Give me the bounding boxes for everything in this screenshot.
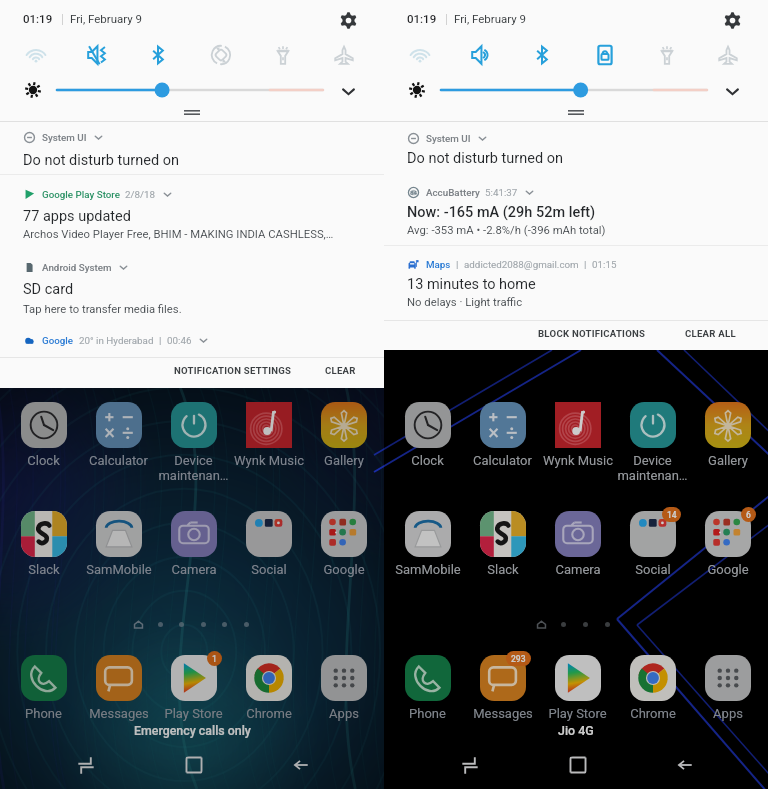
staticText: Calculator [473, 453, 532, 468]
button[interactable]: Wi-Fi [397, 39, 443, 71]
staticText: Calculator [89, 453, 148, 468]
button[interactable]: SamMobile [81, 511, 156, 577]
staticText: System UI [426, 133, 471, 144]
staticText: Phone [25, 706, 62, 721]
button[interactable]: Clock [6, 402, 81, 468]
button[interactable]: Messages [81, 655, 156, 721]
button[interactable]: SamMobile [390, 511, 465, 577]
staticText: Camera [171, 562, 217, 577]
staticText: Apps [329, 706, 359, 721]
button[interactable]: CLEAR ALL [679, 323, 742, 344]
button[interactable]: Device [615, 402, 690, 483]
staticText: System UI [42, 132, 87, 143]
button[interactable]: Screen lock [582, 39, 628, 71]
staticText: Apps [713, 706, 743, 721]
staticText: Play Store [548, 706, 607, 721]
button[interactable]: Phone [390, 655, 465, 721]
button[interactable]: Expand quick settings [720, 78, 744, 102]
button[interactable]: Airplane mode [705, 39, 751, 71]
button[interactable]: CLEAR [319, 360, 362, 381]
button[interactable]: Gallery [306, 402, 381, 468]
staticText: Wynk Music [543, 453, 613, 468]
staticText: | [159, 335, 162, 346]
button[interactable]: Gallery [690, 402, 765, 468]
button[interactable]: Chrome [615, 655, 690, 721]
staticText: 84 [410, 189, 418, 196]
button[interactable]: Settings [719, 7, 745, 33]
button[interactable]: Expand quick settings [336, 78, 360, 102]
staticText: Emergency calls only [134, 723, 251, 738]
staticText: Wynk Music [234, 453, 304, 468]
button[interactable]: Maps [384, 252, 768, 318]
button[interactable]: Wynk Music [231, 402, 306, 468]
button[interactable]: Sound [458, 39, 504, 71]
button[interactable]: Back [279, 749, 323, 781]
button[interactable]: Home [172, 749, 216, 781]
staticText: Fri, February 9 [454, 12, 527, 25]
button[interactable]: 6 [690, 511, 765, 577]
staticText: Jio 4G [558, 723, 594, 738]
staticText: 01:15 [592, 259, 617, 270]
staticText: Device [174, 453, 213, 468]
button[interactable]: Google [0, 330, 384, 352]
button[interactable]: Camera [156, 511, 231, 577]
staticText: Google [323, 562, 365, 577]
staticText: 13 minutes to home [407, 276, 536, 293]
staticText: SamMobile [395, 562, 461, 577]
button[interactable]: Google [306, 511, 381, 577]
staticText: 01:19 [407, 12, 437, 25]
button[interactable]: Camera [540, 511, 615, 577]
button[interactable]: Wi-Fi [13, 39, 59, 71]
button[interactable]: Social [231, 511, 306, 577]
staticText: Social [251, 562, 287, 577]
button[interactable]: Chrome [231, 655, 306, 721]
button[interactable]: Google Play Store [0, 182, 384, 248]
button[interactable]: Phone [6, 655, 81, 721]
button[interactable]: Apps [306, 655, 381, 721]
button[interactable]: Sound [74, 39, 120, 71]
staticText: Now: -165 mA (29h 52m left) [407, 204, 596, 221]
button[interactable]: Airplane mode [321, 39, 367, 71]
staticText: 1 [212, 654, 217, 664]
staticText: Google Play Store [42, 189, 120, 200]
button[interactable]: Bluetooth [519, 39, 565, 71]
button[interactable]: System UI [384, 124, 768, 170]
button[interactable]: 14 [615, 511, 690, 577]
button[interactable]: Calculator [81, 402, 156, 468]
button[interactable]: Calculator [465, 402, 540, 468]
button[interactable]: Clock [390, 402, 465, 468]
button[interactable]: Wynk Music [540, 402, 615, 468]
staticText: 2/8/18 [125, 189, 156, 200]
button[interactable]: Flashlight [644, 39, 690, 71]
button[interactable]: Play Store [540, 655, 615, 721]
staticText: CLEAR ALL [685, 328, 736, 339]
button[interactable]: 1 [156, 655, 231, 721]
staticText: 77 apps updated [23, 208, 131, 225]
button[interactable]: Bluetooth [135, 39, 181, 71]
staticText: Avg: -353 mA • -2.8%/h (-396 mAh total) [407, 224, 606, 237]
button[interactable]: AccuBattery [384, 180, 768, 246]
button[interactable]: NOTIFICATION SETTINGS [168, 360, 298, 381]
button[interactable]: Apps [690, 655, 765, 721]
button[interactable]: BLOCK NOTIFICATIONS [532, 323, 652, 344]
button[interactable]: Flashlight [260, 39, 306, 71]
staticText: AccuBattery [426, 187, 480, 198]
staticText: 6 [746, 510, 751, 520]
button[interactable]: Back [663, 749, 707, 781]
staticText: Messages [473, 706, 533, 721]
button[interactable]: System UI [0, 124, 384, 172]
staticText: BLOCK NOTIFICATIONS [538, 328, 646, 339]
button[interactable]: Home [556, 749, 600, 781]
button[interactable]: Recents [64, 749, 108, 781]
button[interactable]: Slack [465, 511, 540, 577]
button[interactable]: Recents [448, 749, 492, 781]
button[interactable]: Device [156, 402, 231, 483]
button[interactable]: Android System [0, 255, 384, 321]
staticText: | [584, 259, 587, 270]
staticText: Clock [411, 453, 444, 468]
button[interactable]: Auto rotate [198, 39, 244, 71]
button[interactable]: Slack [6, 511, 81, 577]
staticText: Chrome [630, 706, 676, 721]
button[interactable]: 293 [465, 655, 540, 721]
button[interactable]: Settings [335, 7, 361, 33]
